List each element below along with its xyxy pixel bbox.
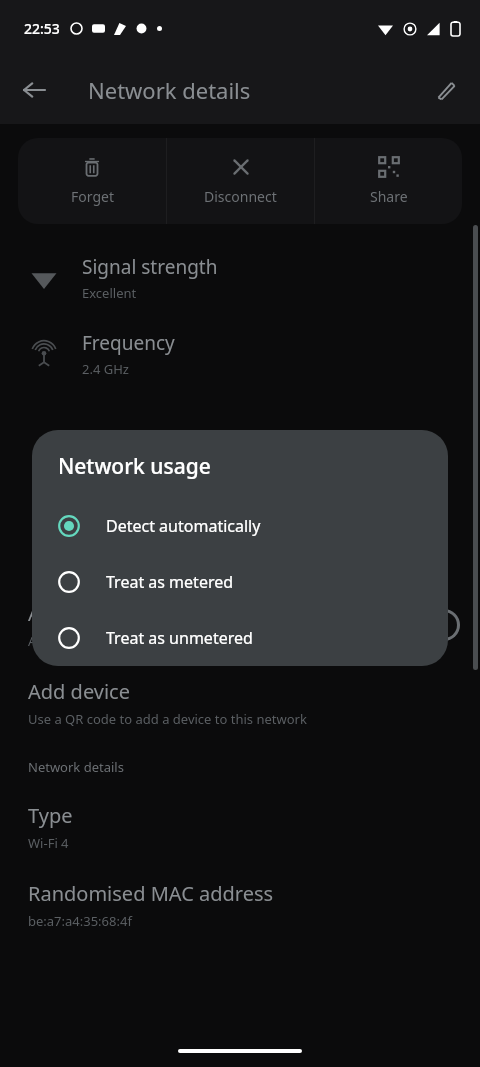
button[interactable]: Edit [424,68,468,112]
staticText: Treat as unmetered [106,627,253,649]
staticText: Frequency [82,330,175,356]
staticText: Add device [28,678,130,705]
button[interactable]: Detect automatically [32,503,448,549]
staticText: Forget [71,187,114,206]
staticText: Auto-connect [28,600,154,627]
staticText: Treat as metered [106,571,234,593]
staticText: Disconnect [204,187,277,206]
staticText: Share [370,187,408,206]
button[interactable]: Add device [0,678,480,728]
staticText: Signal strength [82,254,218,280]
staticText: Network details [88,75,251,105]
staticText: Detect automatically [106,515,261,537]
button[interactable]: Disconnect [167,138,314,224]
button[interactable]: Type [0,802,480,852]
staticText: Network usage [58,452,211,481]
button[interactable]: Randomised MAC address [0,880,480,930]
staticText: Wi-Fi 4 [28,834,69,852]
button[interactable]: Treat as metered [32,559,448,605]
button[interactable]: Share [315,138,462,224]
staticText: Type [28,802,73,829]
staticText: Allow connection to this network when in… [28,632,319,650]
button[interactable]: Back [12,68,56,112]
button[interactable]: Auto-connect [0,600,480,650]
staticText: Network details [28,758,124,776]
button[interactable]: Treat as unmetered [32,615,448,661]
staticText: Excellent [82,284,137,302]
staticText: 2.4 GHz [82,360,129,378]
staticText: 22:53 [24,19,60,38]
staticText: Use a QR code to add a device to this ne… [28,710,307,728]
staticText: Randomised MAC address [28,880,274,907]
staticText: be:a7:a4:35:68:4f [28,912,132,930]
button[interactable]: Forget [18,138,166,224]
